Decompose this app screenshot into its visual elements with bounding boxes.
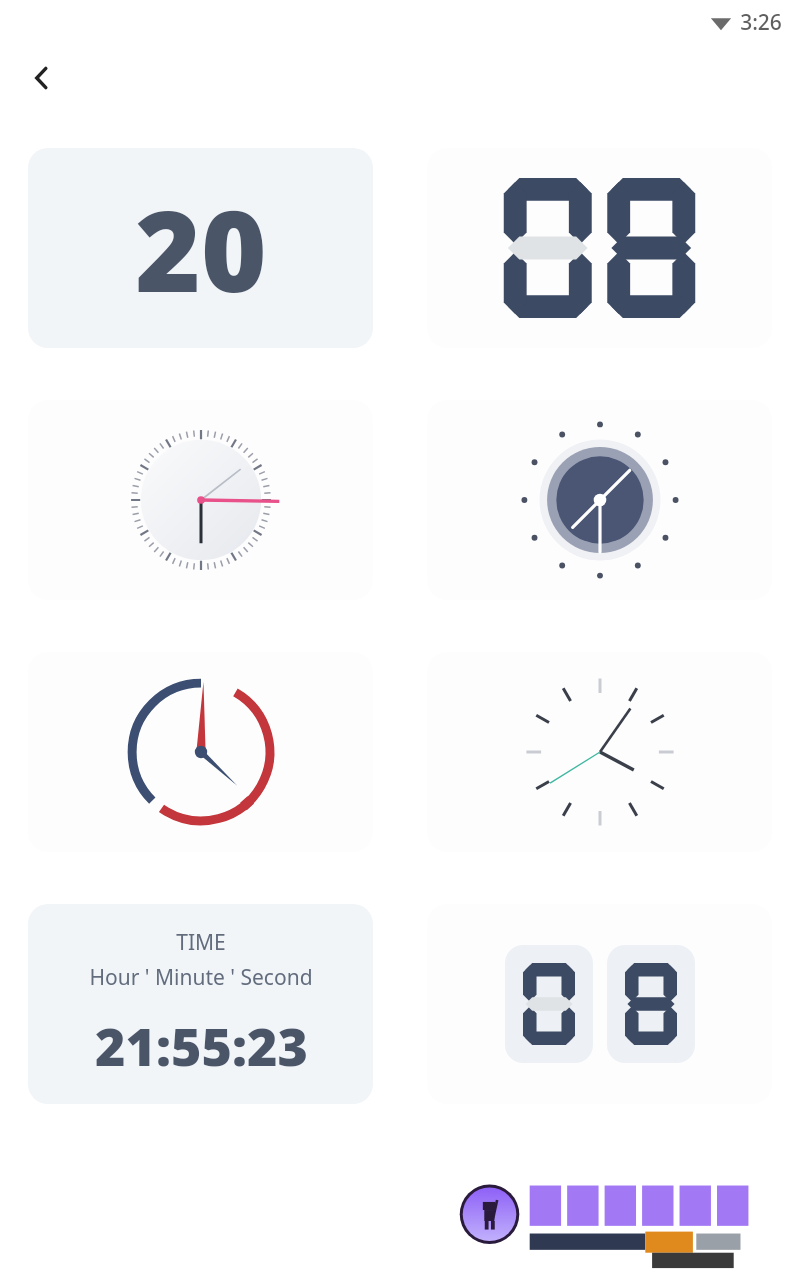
button[interactable]: Digital time watch face — [28, 904, 373, 1104]
button[interactable]: Dot analog watch face — [427, 400, 772, 600]
button[interactable]: Tick analog watch face — [28, 400, 373, 600]
staticText: 20 — [135, 172, 267, 325]
button[interactable]: Minimal analog watch face — [427, 652, 772, 852]
staticText: 3:26 — [740, 8, 782, 37]
staticText: Hour ' Minute ' Second — [89, 963, 313, 992]
button[interactable]: Tile seven segment watch face — [427, 904, 772, 1104]
staticText: 21:55:23 — [95, 1010, 308, 1081]
staticText: TIME — [176, 928, 226, 957]
button[interactable]: Number twenty watch face — [28, 148, 373, 348]
button[interactable]: Arc stopwatch watch face — [28, 652, 373, 852]
button[interactable]: Back — [16, 52, 68, 104]
button[interactable]: Seven segment watch face — [427, 148, 772, 348]
